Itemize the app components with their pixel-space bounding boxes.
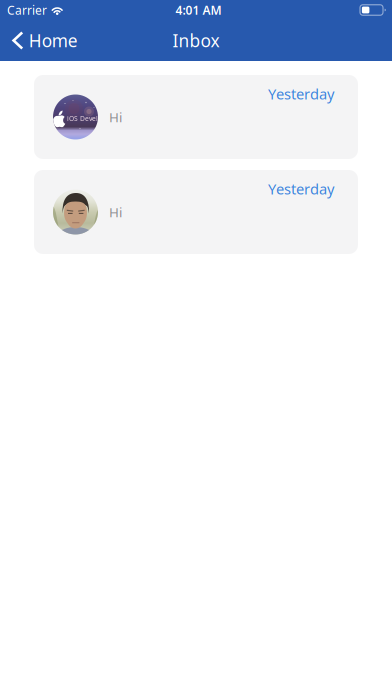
- staticText: Home: [29, 29, 78, 52]
- staticText: Hi: [109, 203, 122, 221]
- staticText: iOS Developer: [67, 114, 112, 123]
- button[interactable]: Yesterday: [34, 75, 358, 159]
- staticText: Yesterday: [268, 179, 334, 198]
- staticText: Hi: [109, 108, 122, 126]
- button[interactable]: Home: [0, 20, 88, 61]
- staticText: 4:01 AM: [175, 2, 221, 18]
- staticText: Carrier: [7, 2, 47, 18]
- staticText: Inbox: [172, 29, 219, 52]
- staticText: Yesterday: [268, 84, 334, 103]
- button[interactable]: Yesterday: [34, 170, 358, 254]
